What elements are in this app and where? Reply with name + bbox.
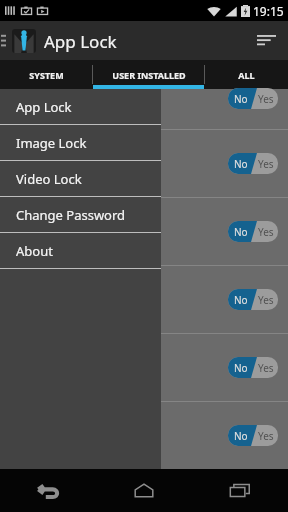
button[interactable]: Change Password (0, 197, 161, 232)
staticText: Yes (258, 225, 274, 239)
button[interactable]: No (228, 289, 278, 310)
staticText: No (234, 225, 248, 239)
staticText: Image Lock (16, 134, 87, 152)
button[interactable]: Recents (210, 469, 270, 512)
staticText: Yes (258, 92, 274, 106)
button[interactable]: No (0, 198, 288, 265)
button[interactable]: Sort (244, 21, 288, 60)
staticText: SYSTEM (29, 69, 64, 81)
button[interactable]: No (228, 425, 278, 446)
staticText: Yes (258, 157, 274, 171)
button[interactable]: No (228, 153, 278, 174)
staticText: App Lock (44, 30, 117, 53)
button[interactable]: App Lock icon (12, 29, 36, 53)
staticText: Yes (258, 361, 274, 375)
button[interactable]: No (0, 402, 288, 469)
button[interactable]: About (0, 233, 161, 268)
staticText: Change Password (16, 206, 126, 224)
button[interactable]: No (0, 334, 288, 401)
staticText: No (234, 92, 248, 106)
button[interactable]: Video Lock (0, 161, 161, 196)
button[interactable]: Image Lock (0, 125, 161, 160)
button[interactable]: No (0, 130, 288, 197)
staticText: App Lock (16, 98, 72, 116)
staticText: Yes (258, 429, 274, 443)
button[interactable]: USER INSTALLED (93, 60, 204, 89)
staticText: About (16, 242, 53, 260)
button[interactable]: App Lock (0, 89, 161, 124)
button[interactable]: Home (114, 469, 174, 512)
button[interactable]: Back (18, 469, 78, 512)
staticText: ALL (238, 69, 255, 81)
button[interactable]: No (0, 89, 288, 129)
staticText: No (234, 361, 248, 375)
button[interactable]: No (228, 88, 278, 109)
staticText: 19:15 (253, 3, 284, 19)
staticText: No (234, 293, 248, 307)
button[interactable]: ALL (205, 60, 288, 89)
button[interactable]: No (228, 221, 278, 242)
staticText: Video Lock (16, 170, 82, 188)
staticText: No (234, 429, 248, 443)
staticText: USER INSTALLED (112, 69, 186, 81)
button[interactable]: No (0, 266, 288, 333)
staticText: No (234, 157, 248, 171)
staticText: Yes (258, 293, 274, 307)
button[interactable]: SYSTEM (0, 60, 92, 89)
button[interactable]: No (228, 357, 278, 378)
